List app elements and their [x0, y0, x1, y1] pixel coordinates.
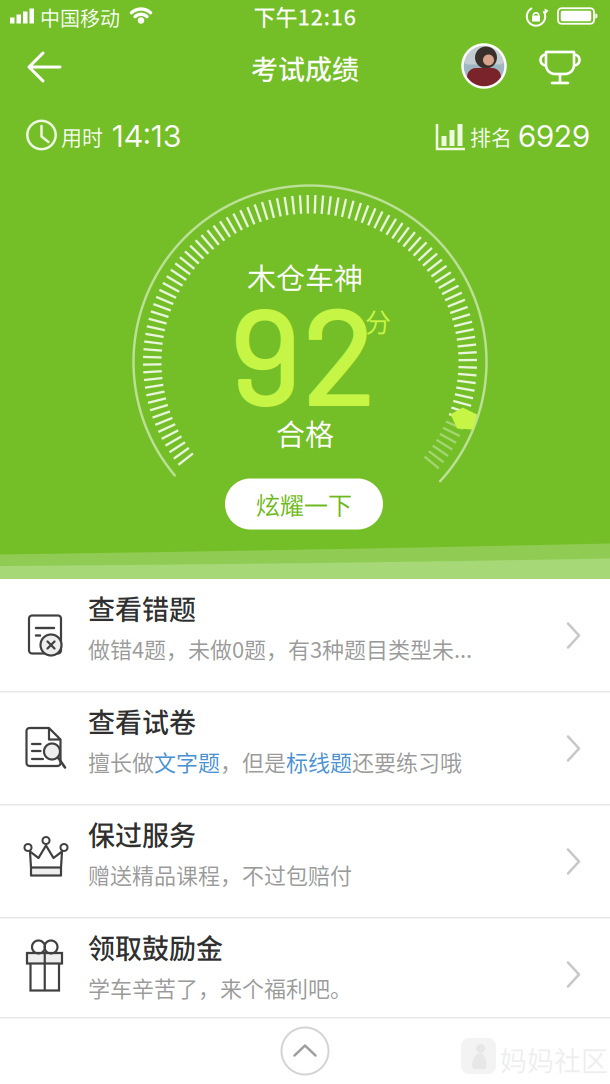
- button[interactable]: Collapse: [281, 1027, 328, 1074]
- staticText: 领取鼓励金: [88, 927, 223, 967]
- staticText: 考试成绩: [251, 48, 359, 88]
- staticText: 14:13: [112, 118, 181, 154]
- button[interactable]: Profile: [462, 44, 505, 87]
- staticText: 做错4题，未做0题，有3种题目类型未...: [88, 632, 472, 664]
- button[interactable]: 查看错题: [0, 579, 610, 689]
- staticText: 用时: [61, 121, 103, 151]
- staticText: 分: [365, 302, 391, 340]
- button[interactable]: 查看试卷: [0, 692, 610, 802]
- staticText: 中国移动: [40, 3, 120, 32]
- staticText: 标线题: [286, 745, 352, 777]
- button[interactable]: 炫耀一下: [225, 478, 383, 529]
- staticText: 木仓车神: [247, 256, 363, 298]
- button[interactable]: Back: [0, 0, 76, 96]
- staticText: 排名: [470, 121, 512, 151]
- staticText: ，但是: [220, 745, 286, 777]
- staticText: 6929: [518, 118, 590, 154]
- staticText: 妈妈社区: [500, 1040, 608, 1079]
- staticText: 合格: [276, 412, 334, 454]
- staticText: 擅长做: [88, 745, 154, 777]
- staticText: 保过服务: [88, 814, 196, 854]
- staticText: 查看错题: [88, 588, 196, 628]
- staticText: 还要练习哦: [352, 745, 462, 777]
- staticText: 赠送精品课程，不过包赔付: [88, 858, 352, 890]
- staticText: 炫耀一下: [256, 487, 352, 521]
- staticText: 学车辛苦了，来个福利吧。: [88, 971, 352, 1003]
- staticText: 92: [229, 269, 376, 433]
- staticText: 下午12:16: [253, 0, 356, 32]
- staticText: 文字题: [154, 745, 220, 777]
- button[interactable]: Rankings: [536, 49, 584, 87]
- button[interactable]: 领取鼓励金: [0, 918, 610, 1028]
- staticText: 查看试卷: [88, 701, 196, 741]
- button[interactable]: 保过服务: [0, 805, 610, 915]
